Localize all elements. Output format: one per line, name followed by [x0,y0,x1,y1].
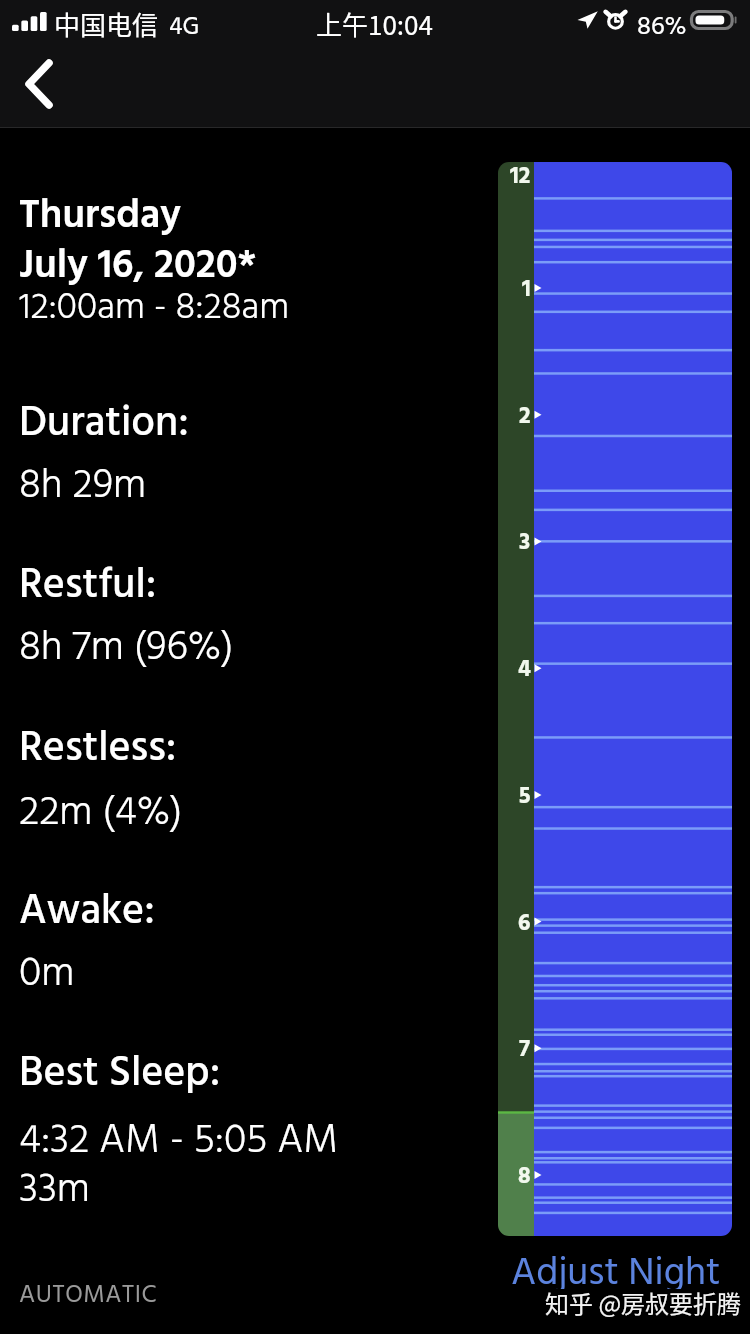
staticText: Awake: [19,879,155,946]
staticText: Thursday [19,185,181,249]
staticText: Restless: [19,716,177,783]
staticText: 6 [518,906,531,938]
staticText: 12 [510,162,531,191]
staticText: AUTOMATIC [19,1276,158,1316]
staticText: 86% [637,7,687,49]
staticText: 2 [519,399,531,431]
staticText: 8h 29m [19,454,147,520]
staticText: 4 [518,652,531,684]
staticText: 0m [19,942,75,1008]
staticText: 7 [519,1032,531,1064]
button[interactable]: Back [0,44,78,124]
staticText: 8h 7m (96%) [19,616,234,682]
staticText: 8 [518,1159,531,1191]
staticText: 中国电信 [54,5,159,43]
staticText: 3 [519,525,531,557]
button[interactable]: Adjust Night [490,1243,742,1289]
staticText: July 16, 2020* [19,235,257,299]
staticText: 22m (4%) [19,781,183,847]
staticText: 上午10:04 [316,5,433,43]
staticText: 5 [519,779,531,811]
staticText: 知乎 @房叔要折腾 [545,1285,742,1320]
staticText: Adjust Night [511,1243,721,1289]
staticText: 33m [19,1158,90,1224]
staticText: Restful: [19,553,157,620]
staticText: 4G [169,8,200,48]
staticText: 4:32 AM - 5:05 AM [19,1109,339,1175]
staticText: Duration: [19,391,189,458]
staticText: Best Sleep: [19,1041,221,1108]
staticText: 1 [522,272,531,304]
staticText: 12:00am - 8:28am [19,279,290,338]
